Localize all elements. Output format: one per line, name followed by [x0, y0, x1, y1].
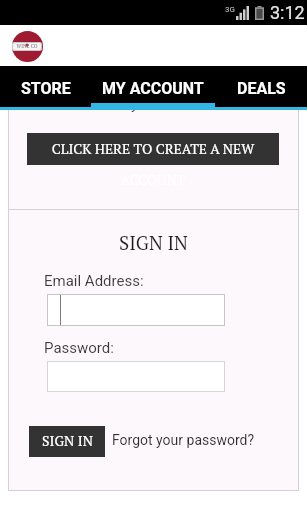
staticText: Email Address:: [44, 272, 144, 290]
staticText: STORE: [21, 79, 71, 98]
staticText: WINE CO: [12, 43, 42, 50]
button[interactable]: [47, 361, 225, 392]
staticText: 3G: [225, 5, 235, 14]
staticText: 3:12: [270, 2, 305, 23]
button[interactable]: STORE: [0, 66, 91, 107]
staticText: SIGN IN: [42, 431, 93, 450]
button[interactable]: Forgot your password?: [112, 432, 255, 448]
staticText: SIGN IN: [8, 230, 299, 255]
button[interactable]: SIGN IN: [29, 426, 105, 457]
staticText: your: [131, 110, 160, 113]
staticText: MY ACCOUNT: [102, 79, 204, 98]
staticText: Password:: [44, 339, 114, 357]
button[interactable]: Home logo: [11, 30, 43, 62]
button[interactable]: DEALS: [215, 66, 307, 107]
button[interactable]: [27, 133, 279, 165]
staticText: CLICK HERE TO CREATE A NEW ACCOUNT: [31, 139, 275, 189]
staticText: DEALS: [237, 79, 286, 98]
button[interactable]: MY ACCOUNT: [91, 66, 215, 107]
button[interactable]: [47, 294, 225, 326]
